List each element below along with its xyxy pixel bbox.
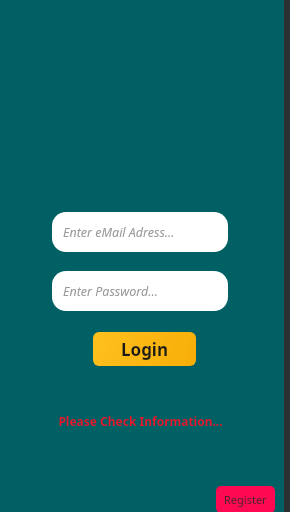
staticText: Register [224, 492, 267, 507]
staticText: Please Check Information... [58, 413, 223, 429]
button[interactable]: Enter eMail Adress... [52, 212, 228, 252]
button[interactable]: Enter Password... [52, 271, 228, 311]
staticText: Login [121, 338, 169, 361]
staticText: Enter Password... [63, 283, 158, 300]
staticText: Enter eMail Adress... [63, 224, 175, 241]
button[interactable]: Register [216, 486, 275, 512]
button[interactable]: Login [93, 332, 196, 366]
